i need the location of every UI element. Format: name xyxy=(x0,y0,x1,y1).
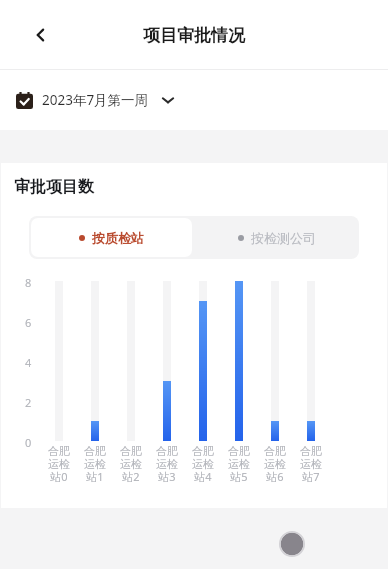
staticText: 8 xyxy=(25,275,32,289)
staticText: 合肥 运检 站7 xyxy=(300,444,322,484)
staticText: 按质检站 xyxy=(92,230,144,246)
button[interactable]: 按质检站 xyxy=(31,218,192,257)
button[interactable]: Home xyxy=(279,531,305,557)
staticText: 2023年7月第一周 xyxy=(42,91,149,109)
button[interactable]: 2023年7月第一周 xyxy=(0,70,388,130)
staticText: 合肥 运检 站0 xyxy=(48,444,70,484)
staticText: 0 xyxy=(25,435,32,449)
staticText: 4 xyxy=(25,355,32,369)
staticText: 合肥 运检 站3 xyxy=(156,444,178,484)
button[interactable]: 按检测公司 xyxy=(194,216,359,259)
staticText: 合肥 运检 站4 xyxy=(192,444,214,484)
staticText: 合肥 运检 站1 xyxy=(84,444,106,484)
staticText: 项目审批情况 xyxy=(143,25,245,46)
staticText: 6 xyxy=(25,315,32,329)
staticText: 合肥 运检 站5 xyxy=(228,444,250,484)
staticText: 审批项目数 xyxy=(14,177,94,197)
staticText: 合肥 运检 站2 xyxy=(120,444,142,484)
staticText: 2 xyxy=(25,395,32,409)
staticText: 合肥 运检 站6 xyxy=(264,444,286,484)
button[interactable]: Back xyxy=(21,15,61,55)
staticText: 按检测公司 xyxy=(251,230,316,246)
